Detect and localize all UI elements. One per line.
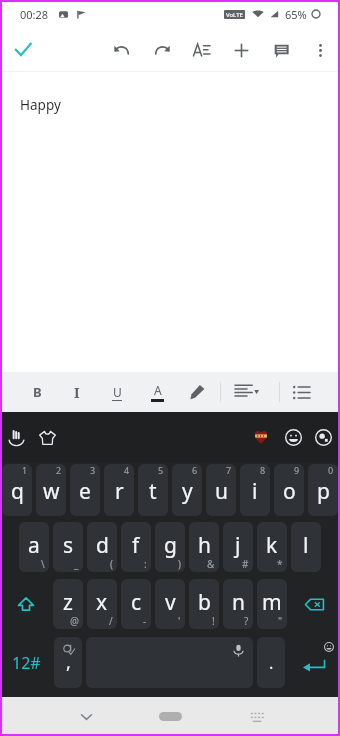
button[interactable]: s: [53, 522, 83, 572]
button[interactable]: Space: [86, 637, 253, 688]
button[interactable]: o: [274, 464, 304, 516]
button[interactable]: Comment: [264, 33, 298, 67]
button[interactable]: Text formatting: [184, 33, 218, 67]
button[interactable]: Emoji: [281, 425, 305, 449]
button[interactable]: 12#: [0, 637, 52, 688]
staticText: 8: [260, 464, 266, 476]
staticText: _: [74, 557, 79, 571]
button[interactable]: i: [240, 464, 270, 516]
button[interactable]: n: [223, 579, 253, 629]
staticText: 1: [22, 464, 28, 476]
button[interactable]: Bold: [22, 377, 52, 407]
button[interactable]: v: [155, 579, 185, 629]
staticText: A: [154, 382, 162, 398]
staticText: p: [317, 477, 330, 506]
button[interactable]: Home: [159, 712, 182, 721]
button[interactable]: r: [104, 464, 134, 516]
staticText: w: [43, 477, 60, 506]
staticText: U: [113, 384, 122, 400]
staticText: @: [70, 614, 79, 628]
staticText: #: [242, 557, 249, 571]
staticText: ): [178, 557, 181, 571]
button[interactable]: x: [87, 579, 117, 629]
button[interactable]: l: [291, 522, 321, 572]
button[interactable]: Comma: [54, 637, 82, 688]
button[interactable]: Redo: [144, 33, 178, 67]
staticText: a: [28, 531, 40, 560]
button[interactable]: Add: [224, 33, 258, 67]
button[interactable]: Undo: [105, 33, 139, 67]
button[interactable]: Done: [5, 32, 41, 68]
button[interactable]: u: [206, 464, 236, 516]
staticText: c: [131, 588, 142, 617]
button[interactable]: Keyboard settings: [311, 425, 335, 449]
staticText: n: [232, 588, 245, 617]
button[interactable]: d: [87, 522, 117, 572]
button[interactable]: Stickers: [250, 426, 272, 448]
staticText: ": [278, 614, 283, 628]
staticText: v: [165, 588, 176, 617]
button[interactable]: c: [121, 579, 151, 629]
staticText: ,: [66, 650, 71, 675]
button[interactable]: Text color: [142, 377, 172, 407]
staticText: &: [207, 557, 215, 571]
staticText: ?: [244, 614, 249, 628]
staticText: B: [33, 383, 42, 401]
button[interactable]: Handwriting: [3, 424, 29, 450]
button[interactable]: Hide keyboard: [69, 699, 104, 734]
staticText: Happy: [20, 96, 61, 114]
staticText: b: [198, 588, 211, 617]
button[interactable]: g: [155, 522, 185, 572]
staticText: /: [109, 614, 113, 628]
button[interactable]: Period: [257, 637, 285, 688]
button[interactable]: b: [189, 579, 219, 629]
staticText: :: [144, 557, 147, 571]
button[interactable]: z: [53, 579, 83, 629]
button[interactable]: Shift: [0, 579, 51, 629]
button[interactable]: w: [36, 464, 66, 516]
button[interactable]: Paragraph alignment: [232, 377, 262, 407]
button[interactable]: e: [70, 464, 100, 516]
staticText: 65%: [285, 7, 307, 22]
staticText: e: [79, 477, 91, 506]
staticText: h: [198, 531, 211, 560]
button[interactable]: j: [223, 522, 253, 572]
staticText: g: [164, 531, 177, 560]
staticText: i: [252, 477, 258, 506]
button[interactable]: More options: [303, 33, 337, 67]
staticText: y: [182, 477, 193, 506]
staticText: *: [277, 557, 283, 571]
button[interactable]: Switch keyboard: [239, 699, 274, 734]
staticText: I: [74, 383, 80, 402]
staticText: k: [266, 531, 278, 560]
button[interactable]: m: [257, 579, 287, 629]
button[interactable]: Italic: [62, 377, 92, 407]
staticText: 2: [56, 464, 62, 476]
button[interactable]: f: [121, 522, 151, 572]
button[interactable]: Themes: [34, 424, 60, 450]
staticText: t: [149, 477, 157, 506]
button[interactable]: Enter: [287, 637, 340, 688]
staticText: d: [96, 531, 109, 560]
staticText: f: [132, 531, 140, 560]
button[interactable]: y: [172, 464, 202, 516]
button[interactable]: Highlight: [182, 377, 212, 407]
staticText: 6: [192, 464, 198, 476]
button[interactable]: k: [257, 522, 287, 572]
staticText: 0: [328, 464, 334, 476]
button[interactable]: a: [19, 522, 49, 572]
button[interactable]: Backspace: [289, 579, 340, 629]
staticText: (: [110, 557, 113, 571]
staticText: ': [178, 614, 181, 628]
button[interactable]: q: [2, 464, 32, 516]
button[interactable]: Underline: [102, 377, 132, 407]
staticText: q: [11, 477, 24, 506]
button[interactable]: h: [189, 522, 219, 572]
staticText: o: [283, 477, 296, 506]
staticText: j: [235, 531, 241, 560]
button[interactable]: t: [138, 464, 168, 516]
button[interactable]: Bulleted list: [286, 377, 316, 407]
staticText: s: [63, 531, 74, 560]
staticText: !: [212, 614, 215, 628]
button[interactable]: p: [308, 464, 338, 516]
